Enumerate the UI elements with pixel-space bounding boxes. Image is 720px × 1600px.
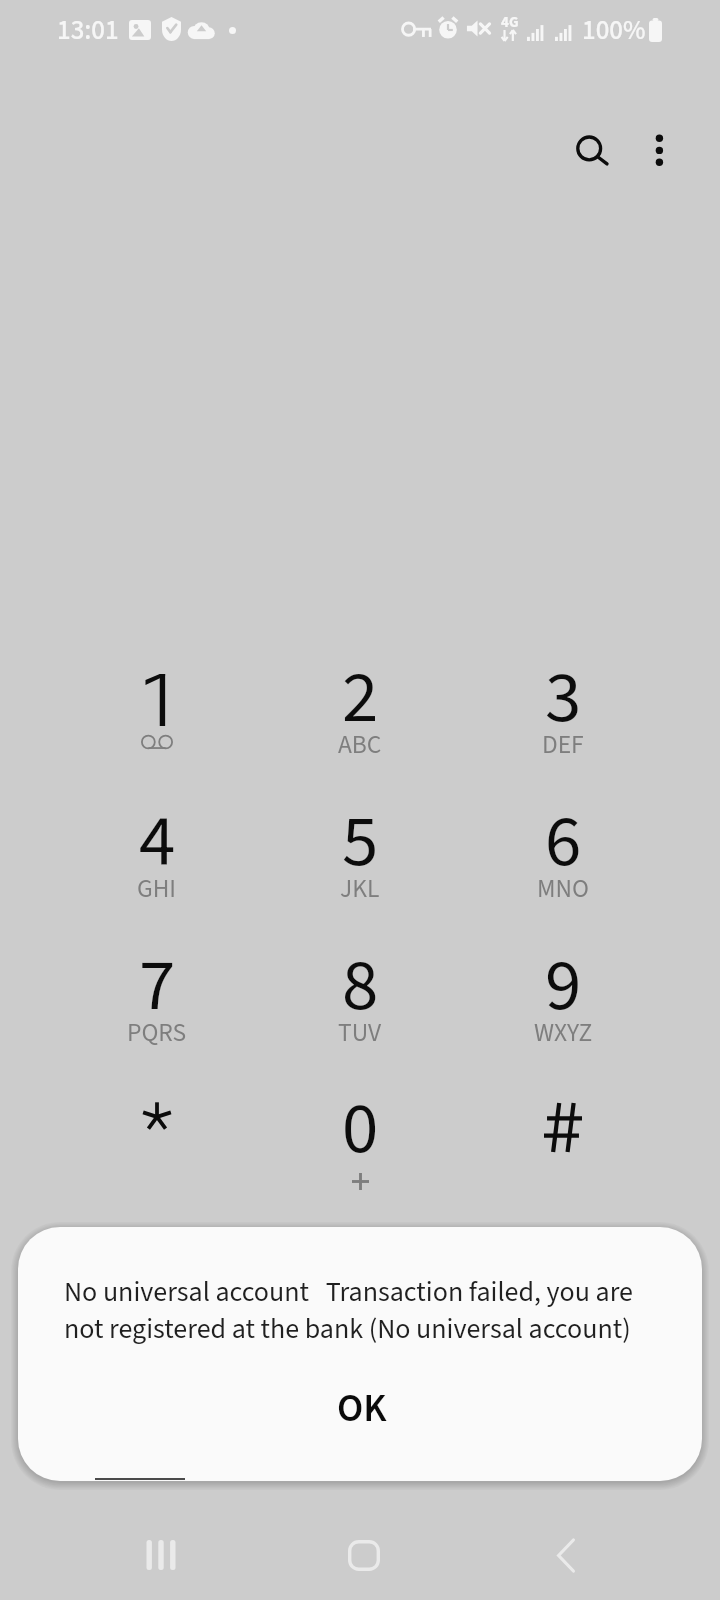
staticText: 6: [545, 790, 582, 894]
button[interactable]: [463, 1062, 663, 1205]
button[interactable]: Home: [304, 1514, 424, 1596]
button[interactable]: Search: [553, 112, 625, 184]
staticText: WXYZ: [534, 1015, 593, 1051]
button[interactable]: 5: [260, 775, 460, 918]
button[interactable]: 6: [463, 775, 663, 918]
staticText: 3: [545, 646, 582, 750]
staticText: 100%: [582, 11, 646, 49]
button[interactable]: 9: [463, 919, 663, 1062]
staticText: 7: [139, 934, 176, 1038]
staticText: 4G: [501, 12, 519, 33]
staticText: 0: [342, 1077, 379, 1181]
button[interactable]: 4: [57, 775, 257, 918]
staticText: 4: [139, 790, 176, 894]
staticText: ABC: [338, 727, 382, 763]
button[interactable]: [57, 1062, 257, 1205]
button[interactable]: Recents: [102, 1514, 222, 1596]
staticText: GHI: [137, 871, 177, 907]
button[interactable]: [57, 631, 257, 774]
staticText: PQRS: [127, 1015, 187, 1051]
button[interactable]: 0: [260, 1062, 460, 1205]
staticText: 8: [342, 934, 379, 1038]
staticText: TUV: [338, 1015, 382, 1051]
button[interactable]: More options: [624, 112, 696, 184]
staticText: JKL: [340, 871, 380, 907]
staticText: DEF: [542, 727, 584, 763]
button[interactable]: 3: [463, 631, 663, 774]
staticText: 13:01: [57, 11, 119, 49]
staticText: No universal account Transaction failed,…: [64, 1272, 656, 1350]
staticText: MNO: [537, 871, 589, 907]
staticText: OK: [337, 1381, 387, 1437]
button[interactable]: 7: [57, 919, 257, 1062]
button[interactable]: 2: [260, 631, 460, 774]
button[interactable]: 8: [260, 919, 460, 1062]
staticText: 9: [545, 934, 582, 1038]
staticText: 5: [342, 790, 379, 894]
button[interactable]: OK: [20, 1369, 702, 1449]
staticText: 2: [342, 646, 379, 750]
button[interactable]: Back: [506, 1514, 626, 1596]
